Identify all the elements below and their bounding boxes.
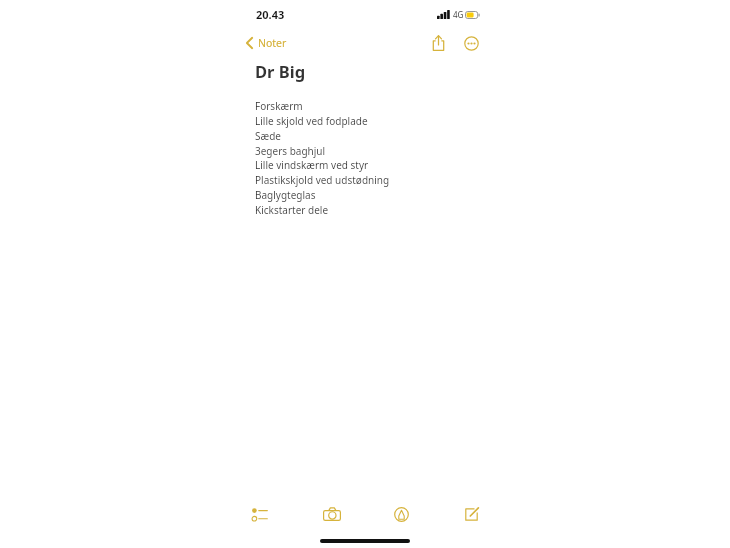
staticText: Noter — [258, 36, 287, 50]
button[interactable]: Camera — [317, 499, 347, 529]
button[interactable]: Checklist — [245, 499, 275, 529]
staticText: 20.43 — [256, 7, 285, 22]
button[interactable]: New note — [456, 499, 486, 529]
staticText: Baglygteglas — [255, 188, 316, 202]
staticText: Kickstarter dele — [255, 203, 329, 217]
staticText: Plastikskjold ved udstødning — [255, 173, 390, 187]
staticText: Lille vindskærm ved styr — [255, 158, 369, 172]
staticText: Sæde — [255, 129, 281, 143]
button[interactable]: Share — [426, 31, 450, 55]
button[interactable]: More options — [459, 31, 483, 55]
staticText: Dr Big — [255, 60, 306, 82]
staticText: 3egers baghjul — [255, 144, 326, 158]
button[interactable]: Markup — [386, 499, 416, 529]
staticText: 4G — [453, 9, 464, 20]
staticText: Forskærm — [255, 99, 303, 113]
staticText: Lille skjold ved fodplade — [255, 114, 368, 128]
button[interactable]: Noter — [243, 33, 290, 53]
